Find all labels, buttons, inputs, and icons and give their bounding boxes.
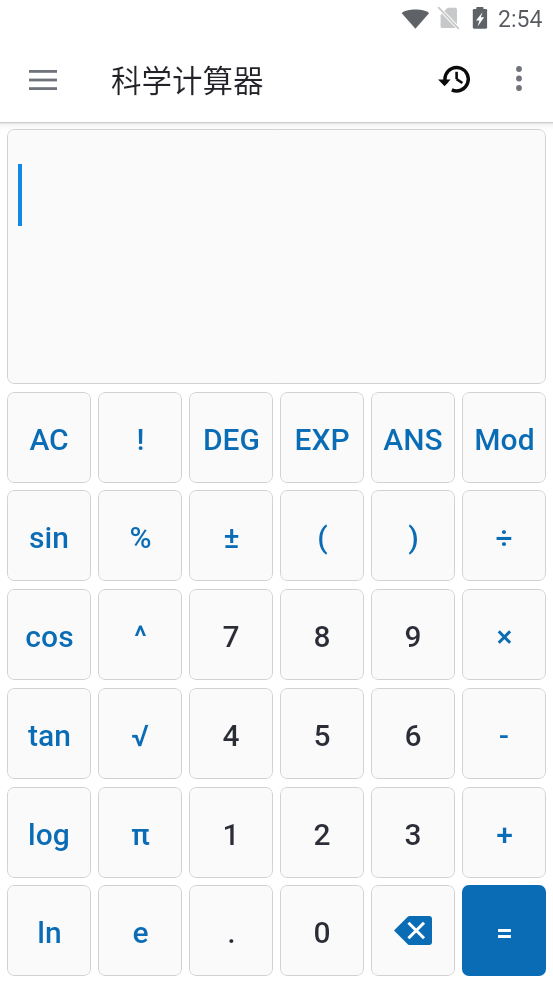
staticText: ^ <box>134 619 147 654</box>
staticText: + <box>496 817 513 852</box>
button[interactable]: × <box>462 589 546 680</box>
button[interactable]: ln <box>7 885 91 976</box>
staticText: 6 <box>404 718 422 753</box>
staticText: 1 <box>222 817 240 852</box>
button[interactable]: 2 <box>280 787 364 878</box>
staticText: 7 <box>222 619 240 654</box>
staticText: 0 <box>313 915 331 950</box>
button[interactable]: 6 <box>371 688 455 779</box>
staticText: AC <box>29 422 69 457</box>
staticText: ! <box>136 422 145 457</box>
staticText: tan <box>28 718 71 753</box>
button[interactable]: tan <box>7 688 91 779</box>
staticText: ANS <box>383 422 443 457</box>
button[interactable]: ( <box>280 490 364 581</box>
button[interactable]: More options <box>497 51 541 107</box>
staticText: sin <box>29 520 69 555</box>
staticText: × <box>496 619 513 654</box>
button[interactable]: % <box>98 490 182 581</box>
button[interactable]: ! <box>98 392 182 483</box>
button[interactable]: AC <box>7 392 91 483</box>
button[interactable]: DEG <box>189 392 273 483</box>
staticText: ÷ <box>495 520 513 555</box>
button[interactable] <box>7 129 546 384</box>
other: Delete <box>394 916 432 945</box>
staticText: 8 <box>313 619 331 654</box>
button[interactable]: - <box>462 688 546 779</box>
button[interactable]: + <box>462 787 546 878</box>
staticText: 5 <box>313 718 331 753</box>
staticText: 4 <box>222 718 240 753</box>
staticText: ln <box>37 915 62 950</box>
staticText: 2:54 <box>498 6 543 33</box>
staticText: cos <box>25 619 74 654</box>
button[interactable]: 1 <box>189 787 273 878</box>
button[interactable]: log <box>7 787 91 878</box>
button[interactable]: 4 <box>189 688 273 779</box>
staticText: e <box>132 915 149 950</box>
staticText: DEG <box>203 422 260 457</box>
staticText: . <box>227 915 236 950</box>
staticText: 9 <box>404 619 422 654</box>
button[interactable]: 8 <box>280 589 364 680</box>
button[interactable]: 5 <box>280 688 364 779</box>
button[interactable]: e <box>98 885 182 976</box>
button[interactable]: Delete <box>371 885 455 976</box>
button[interactable]: cos <box>7 589 91 680</box>
staticText: ( <box>317 520 328 555</box>
staticText: = <box>496 915 513 950</box>
staticText: ) <box>408 520 419 555</box>
button[interactable]: = <box>462 885 546 976</box>
staticText: π <box>131 817 150 852</box>
button[interactable]: History <box>428 51 484 107</box>
button[interactable]: 7 <box>189 589 273 680</box>
button[interactable]: sin <box>7 490 91 581</box>
button[interactable]: ÷ <box>462 490 546 581</box>
button[interactable]: . <box>189 885 273 976</box>
button[interactable]: ± <box>189 490 273 581</box>
button[interactable]: ^ <box>98 589 182 680</box>
staticText: √ <box>131 718 149 753</box>
button[interactable]: ) <box>371 490 455 581</box>
staticText: ± <box>223 520 240 555</box>
staticText: 科学计算器 <box>111 57 264 101</box>
button[interactable]: 0 <box>280 885 364 976</box>
button[interactable]: √ <box>98 688 182 779</box>
staticText: Mod <box>474 422 535 457</box>
staticText: - <box>499 718 509 753</box>
button[interactable]: EXP <box>280 392 364 483</box>
staticText: EXP <box>294 422 350 457</box>
staticText: % <box>129 520 152 555</box>
button[interactable]: Mod <box>462 392 546 483</box>
button[interactable]: 3 <box>371 787 455 878</box>
staticText: log <box>28 817 70 852</box>
button[interactable]: Navigation menu <box>13 52 73 108</box>
staticText: 2 <box>313 817 331 852</box>
button[interactable]: 9 <box>371 589 455 680</box>
button[interactable]: π <box>98 787 182 878</box>
staticText: 3 <box>404 817 422 852</box>
button[interactable]: ANS <box>371 392 455 483</box>
